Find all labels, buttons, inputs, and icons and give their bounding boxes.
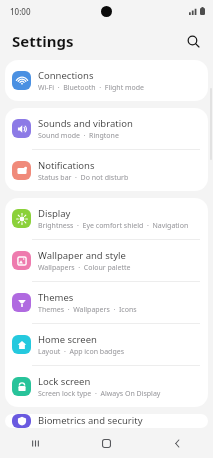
staticText: Screen lock type · Always On Display: [38, 389, 161, 399]
staticText: Display: [38, 207, 71, 220]
button[interactable]: Home screen: [5, 324, 208, 365]
staticText: Wallpaper and style: [38, 249, 126, 262]
button[interactable]: Notifications: [5, 150, 208, 191]
button[interactable]: Display: [5, 198, 208, 239]
staticText: Home screen: [38, 333, 97, 346]
button[interactable]: Lock screen: [5, 366, 208, 407]
staticText: Layout · App icon badges: [38, 347, 125, 357]
staticText: Biometrics and security: [38, 414, 143, 427]
staticText: Status bar · Do not disturb: [38, 173, 129, 183]
staticText: Sound mode · Ringtone: [38, 131, 119, 141]
staticText: 10:00: [10, 6, 31, 17]
staticText: Wallpapers · Colour palette: [38, 263, 131, 273]
button[interactable]: Themes: [5, 282, 208, 323]
staticText: Lock screen: [38, 375, 91, 388]
button[interactable]: Sounds and vibration: [5, 108, 208, 149]
button[interactable]: Search: [180, 28, 206, 54]
button[interactable]: Wallpaper and style: [5, 240, 208, 281]
button[interactable]: Recents: [0, 428, 71, 458]
staticText: Settings: [12, 31, 74, 51]
staticText: Notifications: [38, 159, 95, 172]
staticText: Themes: [38, 291, 74, 304]
button[interactable]: Home: [71, 428, 142, 458]
staticText: Brightness · Eye comfort shield · Naviga…: [38, 221, 200, 231]
staticText: Themes · Wallpapers · Icons: [38, 305, 137, 315]
button[interactable]: Biometrics and security: [5, 414, 208, 428]
staticText: Sounds and vibration: [38, 117, 133, 130]
button[interactable]: Connections: [5, 60, 208, 101]
button[interactable]: Back: [142, 428, 213, 458]
staticText: Wi-Fi · Bluetooth · Flight mode: [38, 83, 145, 93]
staticText: Connections: [38, 69, 94, 82]
